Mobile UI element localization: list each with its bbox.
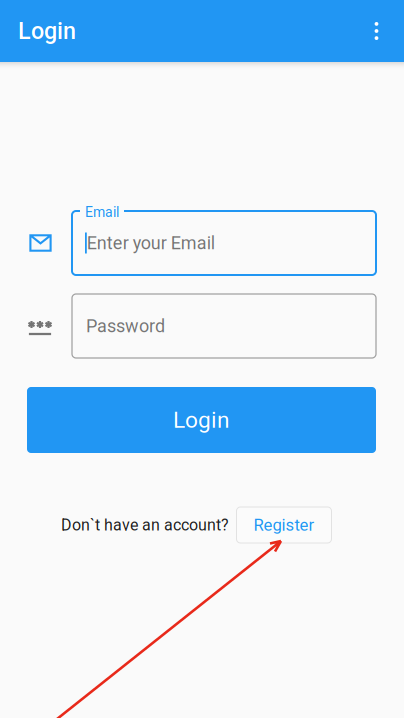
staticText: Enter your Email: [87, 232, 215, 254]
button[interactable]: More options: [359, 14, 393, 48]
staticText: Register: [253, 515, 314, 535]
button[interactable]: Login: [0, 0, 404, 62]
staticText: Email: [85, 204, 119, 220]
button[interactable]: Login: [27, 387, 376, 453]
button[interactable]: Register: [236, 507, 331, 543]
staticText: Don`t have an account?: [61, 516, 229, 534]
staticText: Login: [18, 17, 76, 45]
staticText: Login: [173, 407, 230, 433]
staticText: Password: [86, 315, 165, 337]
